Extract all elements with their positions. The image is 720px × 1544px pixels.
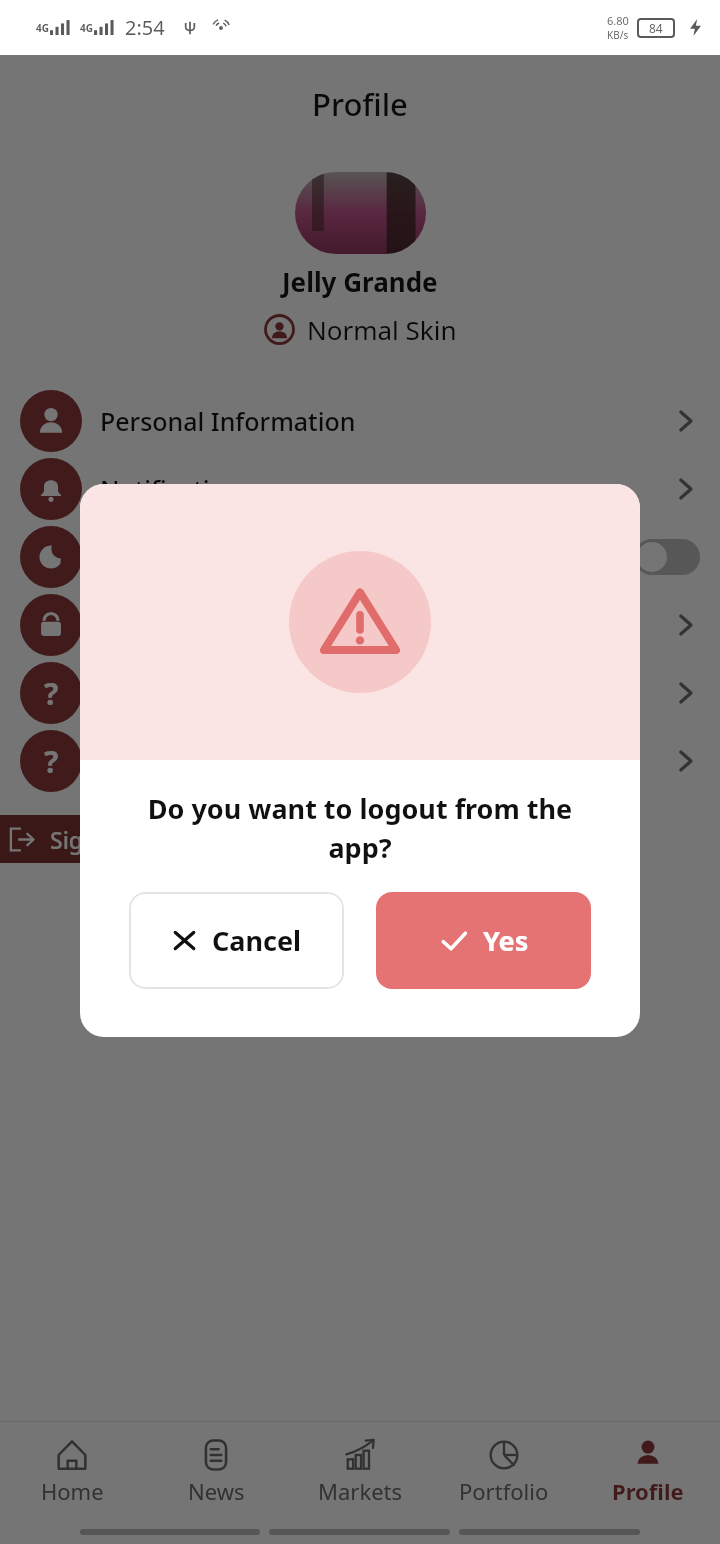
button[interactable]: Profile: [576, 1437, 720, 1506]
button[interactable]: ?: [0, 727, 720, 795]
button[interactable]: Portfolio: [432, 1437, 576, 1506]
other: Open Personal Information: [670, 406, 700, 436]
staticText: Notification: [100, 472, 241, 506]
staticText: Portfolio: [459, 1476, 549, 1506]
staticText: Normal Skin: [307, 312, 457, 347]
staticText: News: [188, 1476, 245, 1506]
button[interactable]: News: [144, 1437, 288, 1506]
other: Open Help Support: [670, 678, 700, 708]
staticText: Yes: [483, 922, 529, 959]
button[interactable]: ?: [0, 659, 720, 727]
button[interactable]: Markets: [288, 1437, 432, 1506]
button[interactable]: Privacy Policy: [0, 591, 720, 659]
staticText: KB/s: [607, 28, 629, 42]
staticText: 6.80: [607, 13, 629, 28]
other: Open Privacy Policy: [670, 610, 700, 640]
staticText: Markets: [318, 1476, 403, 1506]
button[interactable]: Dark Mode toggle: [634, 539, 700, 575]
staticText: Do you want to logout from the app?: [116, 790, 604, 866]
button[interactable]: Yes: [376, 892, 591, 989]
staticText: Profile: [312, 83, 408, 125]
button[interactable]: Sign Out: [0, 815, 170, 863]
staticText: Sign Out: [50, 824, 145, 855]
staticText: 4G: [36, 21, 49, 35]
other: Open Terms & Condition: [670, 746, 700, 776]
other: Open Notification: [670, 474, 700, 504]
staticText: Terms & Condition: [100, 744, 321, 778]
staticText: Profile: [612, 1476, 684, 1506]
staticText: Cancel: [212, 922, 302, 959]
staticText: 4G: [80, 21, 93, 35]
staticText: Jelly Grande: [282, 264, 438, 299]
staticText: Personal Information: [100, 404, 356, 438]
staticText: 84: [649, 20, 663, 36]
button[interactable]: Personal Information: [0, 387, 720, 455]
staticText: Home: [41, 1476, 104, 1506]
staticText: ?: [44, 741, 59, 782]
button[interactable]: Notification: [0, 455, 720, 523]
staticText: 2:54: [125, 14, 165, 41]
button[interactable]: Home: [0, 1437, 144, 1506]
button[interactable]: Cancel: [129, 892, 344, 989]
button[interactable]: Dark Mode: [0, 523, 720, 591]
staticText: ?: [44, 673, 59, 714]
